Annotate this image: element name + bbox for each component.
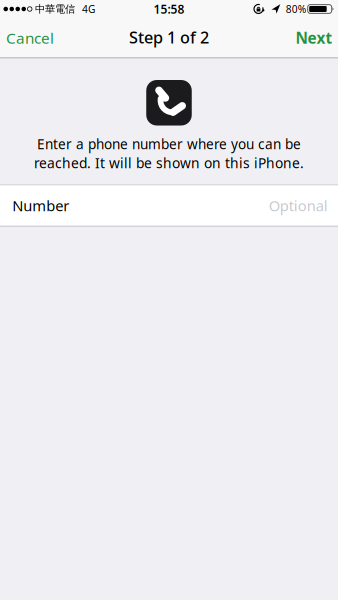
staticText: Enter a phone number where you can be xyxy=(37,135,301,153)
staticText: reached. It will be shown on this iPhone… xyxy=(34,154,304,172)
button[interactable]: Number xyxy=(0,184,338,227)
staticText: 4G xyxy=(82,2,95,16)
staticText: Step 1 of 2 xyxy=(129,26,209,48)
staticText: Cancel xyxy=(6,28,54,48)
staticText: Number xyxy=(12,196,69,215)
button[interactable]: Cancel xyxy=(0,28,54,48)
staticText: Next xyxy=(295,28,332,48)
staticText: 80% xyxy=(286,2,306,16)
staticText: Optional xyxy=(269,196,328,215)
staticText: 15:58 xyxy=(153,1,184,17)
staticText: 中華電信 xyxy=(35,3,75,15)
button[interactable]: Next xyxy=(295,28,338,48)
